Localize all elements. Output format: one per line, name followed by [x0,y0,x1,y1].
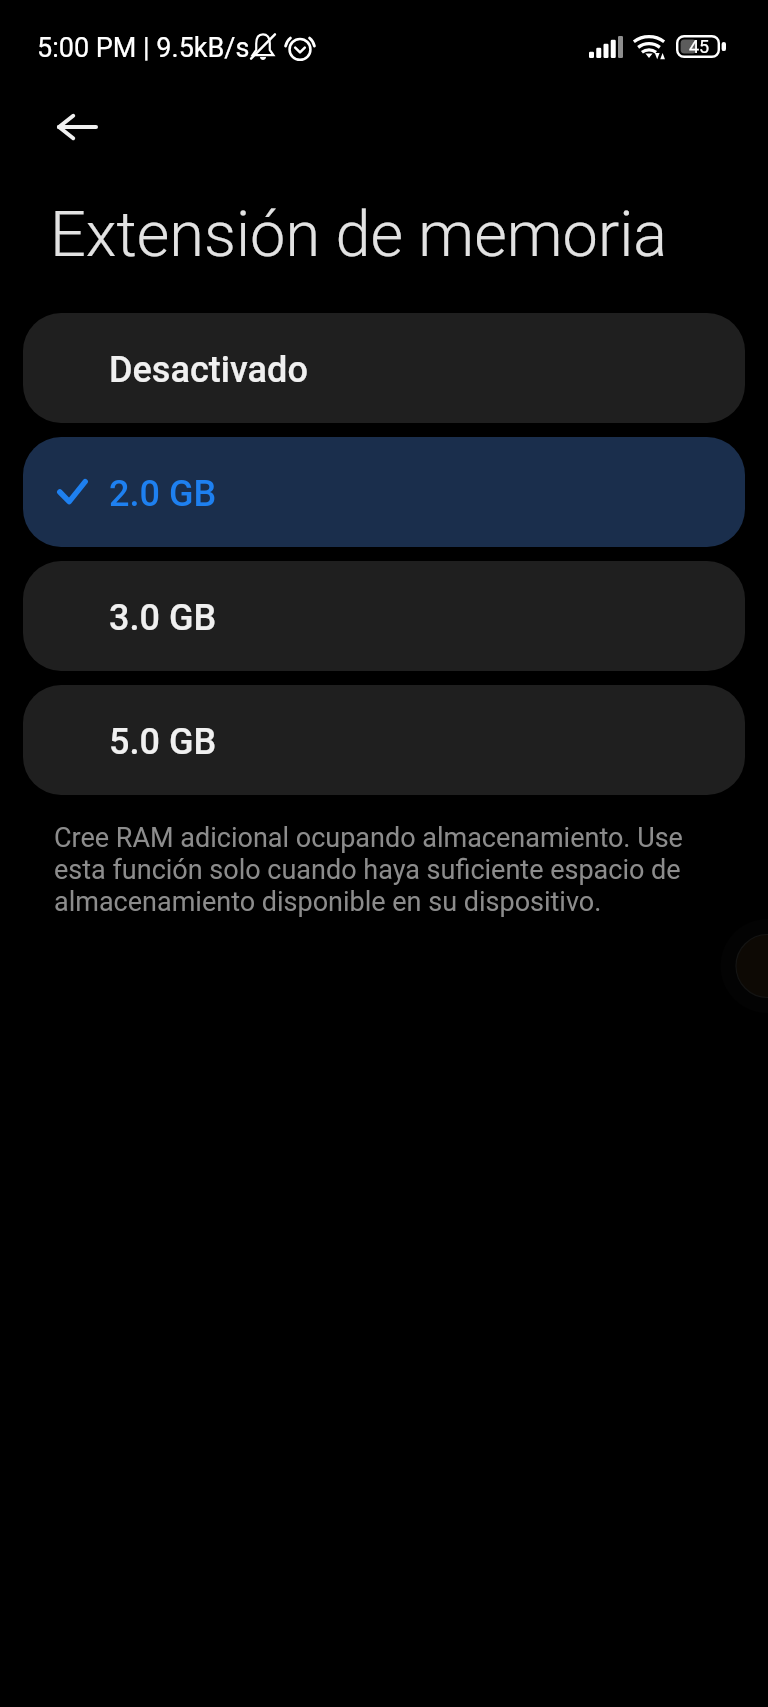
button[interactable]: 3.0 GB [23,561,745,671]
staticText: 45 [689,36,710,57]
staticText: 5.0 GB [109,721,217,763]
button[interactable]: Back [29,79,125,175]
staticText: 2.0 GB [109,473,217,515]
staticText: Cree RAM adicional ocupando almacenamien… [54,822,694,918]
staticText: 3.0 GB [109,597,217,639]
button[interactable]: 2.0 GB [23,437,745,547]
button[interactable]: 5.0 GB [23,685,745,795]
button[interactable]: Desactivado [23,313,745,423]
staticText: Desactivado [109,349,308,391]
staticText: 5:00 PM | 9.5kB/s [37,32,250,64]
staticText: Extensión de memoria [50,197,668,272]
